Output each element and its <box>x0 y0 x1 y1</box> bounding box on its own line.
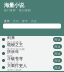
staticText: 卖报小郎君 <box>7 69 22 72</box>
staticText: 阅读 <box>54 66 60 69</box>
staticText: 热门推荐 · 每日更新 <box>4 9 31 12</box>
staticText: 大奉打更人 <box>7 63 27 68</box>
staticText: 阅读 <box>54 59 60 62</box>
staticText: 斗破苍穹 <box>7 56 23 61</box>
staticText: 推荐 <box>4 19 10 23</box>
staticText: 庆余年 <box>7 49 19 54</box>
staticText: 阅读 <box>54 38 60 41</box>
staticText: 诡秘之主 <box>7 42 23 47</box>
staticText: 天蚕土豆 <box>7 62 19 65</box>
staticText: 阅读 <box>54 52 60 55</box>
staticText: 历史 <box>31 19 37 23</box>
staticText: 都市 <box>22 19 28 23</box>
staticText: 海量小说 <box>4 2 24 9</box>
staticText: 玄幻 <box>13 19 19 23</box>
staticText: 阅读 <box>54 45 60 48</box>
staticText: 烽火戏诸侯 <box>7 41 22 44</box>
staticText: 猫腻 <box>7 55 13 58</box>
staticText: 爱潜水的乌贼 <box>7 48 25 51</box>
staticText: 剑来 <box>7 35 15 40</box>
